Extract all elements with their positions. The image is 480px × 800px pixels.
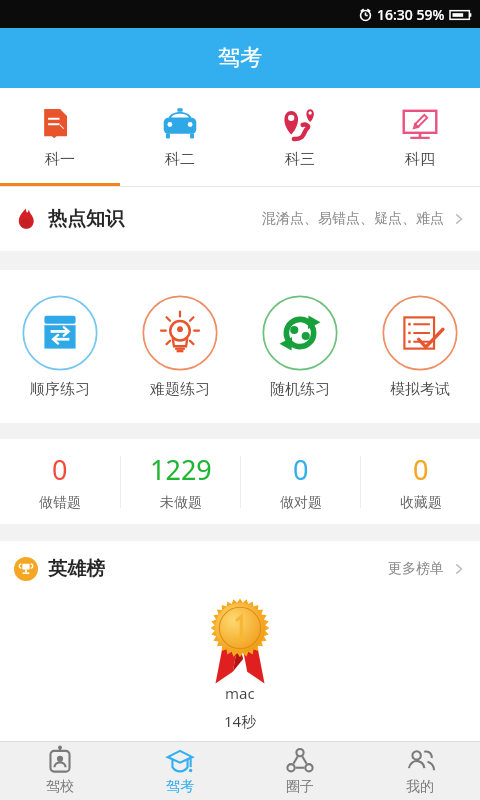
staticText: 1229	[150, 451, 212, 488]
staticText: 0	[293, 451, 309, 488]
staticText: 做错题	[39, 494, 81, 512]
staticText: 科二	[165, 150, 195, 169]
staticText: 难题练习	[150, 380, 210, 399]
button[interactable]: 0	[361, 439, 480, 524]
button[interactable]: 科三	[240, 88, 360, 186]
staticText: 热点知识	[48, 207, 124, 231]
button[interactable]: 热点知识	[0, 187, 480, 251]
staticText: 科三	[285, 150, 315, 169]
button[interactable]: 圈子	[240, 742, 360, 800]
staticText: 混淆点、易错点、疑点、难点	[262, 210, 444, 228]
staticText: 模拟考试	[390, 380, 450, 399]
button[interactable]: 模拟考试	[360, 270, 480, 423]
staticText: 0	[413, 451, 429, 488]
button[interactable]: 1229	[121, 439, 240, 524]
staticText: 做对题	[280, 494, 322, 512]
staticText: 16:30 59%	[377, 5, 445, 24]
button[interactable]: 科四	[360, 88, 480, 186]
button[interactable]: 科二	[120, 88, 240, 186]
staticText: 未做题	[160, 494, 202, 512]
staticText: 14秒	[224, 711, 257, 731]
button[interactable]: 科一	[0, 88, 120, 186]
staticText: 科四	[405, 150, 435, 169]
button[interactable]: 随机练习	[240, 270, 360, 423]
button[interactable]: 英雄榜	[0, 541, 480, 597]
staticText: 驾校	[46, 778, 74, 796]
staticText: 随机练习	[270, 380, 330, 399]
button[interactable]: 我的	[360, 742, 480, 800]
button[interactable]: 难题练习	[120, 270, 240, 423]
staticText: 驾考	[166, 778, 194, 796]
button[interactable]: 0	[241, 439, 360, 524]
staticText: 更多榜单	[388, 560, 444, 578]
staticText: 驾考	[218, 44, 262, 72]
button[interactable]: 驾校	[0, 742, 120, 800]
staticText: mac	[225, 683, 255, 703]
button[interactable]: 0	[0, 439, 120, 524]
button[interactable]: 顺序练习	[0, 270, 120, 423]
button[interactable]: mac	[0, 597, 480, 741]
staticText: 收藏题	[400, 494, 442, 512]
staticText: 科一	[45, 150, 75, 169]
staticText: 0	[52, 451, 68, 488]
staticText: 英雄榜	[48, 557, 105, 581]
staticText: 圈子	[286, 778, 314, 796]
staticText: 我的	[406, 778, 434, 796]
button[interactable]: 驾考	[120, 742, 240, 800]
staticText: 顺序练习	[30, 380, 90, 399]
